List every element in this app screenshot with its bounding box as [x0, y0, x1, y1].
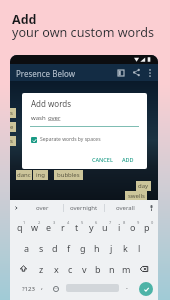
button[interactable]: m	[119, 258, 133, 279]
button[interactable]: overall	[105, 200, 145, 216]
button[interactable]: c	[63, 258, 77, 279]
button[interactable]: ,	[35, 279, 49, 299]
staticText: f	[67, 242, 71, 254]
button[interactable]: ing	[33, 170, 48, 180]
staticText: r	[61, 221, 65, 233]
staticText: u	[102, 221, 108, 233]
button[interactable]: f	[62, 237, 76, 258]
staticText: b	[95, 263, 101, 275]
button[interactable]: .	[120, 279, 134, 299]
staticText: Add words	[31, 98, 72, 109]
staticText: ADD	[122, 156, 134, 163]
staticText: overall	[116, 204, 135, 212]
staticText: over	[48, 114, 61, 122]
button[interactable]: w	[27, 216, 42, 237]
button[interactable]: danc	[16, 170, 32, 180]
staticText: Separate words by spaces	[40, 136, 101, 143]
staticText: m	[122, 263, 131, 275]
staticText: swells	[128, 192, 145, 200]
button[interactable]: More suggestions	[10, 200, 22, 216]
button[interactable]: g	[76, 237, 90, 258]
staticText: ?123	[22, 285, 35, 293]
staticText: 3	[53, 220, 56, 225]
button[interactable]: Backspace	[133, 258, 154, 279]
button[interactable]: ADD	[120, 155, 136, 164]
button[interactable]: over	[22, 200, 63, 216]
button[interactable]: z	[34, 258, 49, 279]
staticText: Add	[12, 11, 37, 28]
staticText: x	[54, 263, 59, 275]
staticText: e	[46, 221, 52, 233]
button[interactable]: CANCEL	[90, 155, 115, 164]
button[interactable]: Separate words by spaces	[31, 136, 101, 143]
button[interactable]: y	[84, 216, 98, 237]
button[interactable]: o	[126, 216, 140, 237]
button[interactable]: bubbles	[54, 170, 83, 180]
staticText: i	[118, 221, 121, 233]
staticText: v	[82, 263, 87, 275]
staticText: your own custom words	[12, 24, 154, 41]
button[interactable]: i	[112, 216, 126, 237]
button[interactable]: Grid view	[114, 66, 127, 79]
staticText: danc	[17, 171, 31, 179]
staticText: ,	[41, 282, 43, 292]
staticText: 1	[23, 220, 26, 225]
button[interactable]: Shift	[12, 258, 34, 279]
staticText: y	[89, 221, 94, 233]
button[interactable]: s	[34, 237, 48, 258]
button[interactable]: ?123	[17, 279, 39, 299]
staticText: 4	[67, 220, 70, 225]
staticText: c	[68, 263, 73, 275]
staticText: over	[36, 204, 49, 212]
button[interactable]: r	[56, 216, 70, 237]
button[interactable]: day	[136, 181, 151, 191]
button[interactable]: v	[77, 258, 91, 279]
staticText: p	[144, 221, 150, 233]
staticText: o	[130, 221, 136, 233]
staticText: .	[126, 282, 128, 292]
button[interactable]: j	[104, 237, 118, 258]
staticText: s	[39, 242, 44, 254]
staticText: g	[80, 242, 86, 254]
staticText: s	[10, 137, 13, 145]
button[interactable]: overnight	[64, 200, 104, 216]
staticText: 8	[123, 220, 126, 225]
button[interactable]: l	[132, 237, 146, 258]
button[interactable]: a	[19, 237, 34, 258]
button[interactable]: s	[10, 136, 16, 146]
staticText: a	[24, 242, 30, 254]
button[interactable]: k	[118, 237, 132, 258]
staticText: n	[109, 263, 115, 275]
staticText: ing	[36, 171, 45, 179]
button[interactable]: q	[12, 216, 27, 237]
button[interactable]: Share	[130, 66, 143, 79]
staticText: 7	[109, 220, 112, 225]
button[interactable]: Enter	[136, 279, 156, 299]
button[interactable]: More options	[143, 66, 156, 79]
button[interactable]: d	[48, 237, 62, 258]
staticText: 0	[151, 220, 154, 225]
button[interactable]: b	[91, 258, 105, 279]
staticText: h	[94, 242, 100, 254]
button[interactable]: Voice input	[145, 200, 158, 216]
button[interactable]: s	[10, 108, 16, 118]
staticText: q	[17, 221, 23, 233]
staticText: k	[123, 242, 128, 254]
button[interactable]: h	[90, 237, 104, 258]
staticText: day	[138, 182, 149, 190]
staticText: 9	[137, 220, 140, 225]
staticText: d	[52, 242, 58, 254]
button[interactable]: swells	[125, 191, 147, 201]
button[interactable]: t	[70, 216, 84, 237]
button[interactable]: e	[42, 216, 56, 237]
button[interactable]: u	[98, 216, 112, 237]
staticText: z	[39, 263, 44, 275]
button[interactable]: x	[49, 258, 63, 279]
button[interactable]: Emoji	[49, 279, 63, 299]
button[interactable]: e	[10, 122, 16, 132]
button[interactable]: n	[105, 258, 119, 279]
staticText: e	[10, 123, 14, 131]
staticText: overnight	[70, 204, 98, 212]
button[interactable]: p	[140, 216, 154, 237]
